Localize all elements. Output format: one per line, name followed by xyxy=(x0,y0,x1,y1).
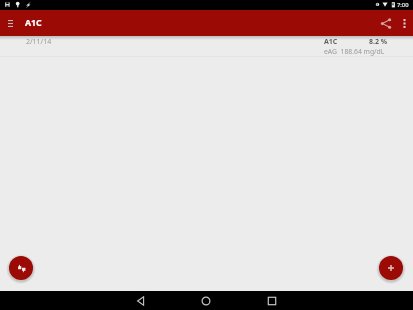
button[interactable]: Recents xyxy=(260,291,284,310)
button[interactable]: More options xyxy=(395,14,413,32)
button[interactable]: Back xyxy=(129,291,153,310)
button[interactable]: Add xyxy=(376,253,406,283)
button[interactable]: Home xyxy=(194,291,218,310)
staticText: A1C xyxy=(25,17,42,29)
staticText: A1C xyxy=(324,37,338,47)
button[interactable]: 2/11/14 xyxy=(0,36,413,56)
button[interactable]: Menu xyxy=(6,16,14,31)
button[interactable]: Compare xyxy=(6,253,36,283)
staticText: 7:00 xyxy=(397,1,409,9)
staticText: 2/11/14 xyxy=(26,37,52,47)
staticText: eAG 188.64 mg/dL xyxy=(324,47,385,56)
staticText: 8.2 % xyxy=(369,37,388,47)
button[interactable]: Share xyxy=(376,14,395,32)
